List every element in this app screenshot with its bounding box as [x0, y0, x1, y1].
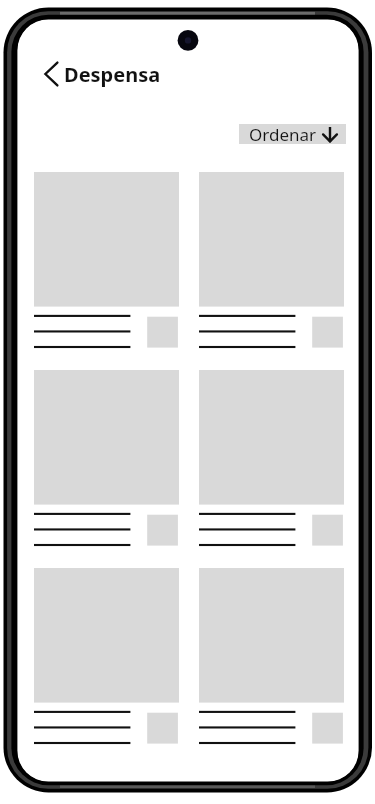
staticText: Ordenar [249, 123, 317, 143]
other: Sort direction [322, 124, 338, 144]
button[interactable] [199, 172, 344, 348]
button[interactable]: Back [41, 57, 161, 91]
button[interactable] [199, 370, 344, 546]
other: Back [41, 57, 61, 91]
button[interactable] [199, 568, 344, 744]
staticText: Despensa [64, 61, 161, 88]
button[interactable] [34, 370, 179, 546]
button[interactable]: Ordenar [239, 124, 346, 144]
button[interactable] [34, 172, 179, 348]
button[interactable] [34, 568, 179, 744]
